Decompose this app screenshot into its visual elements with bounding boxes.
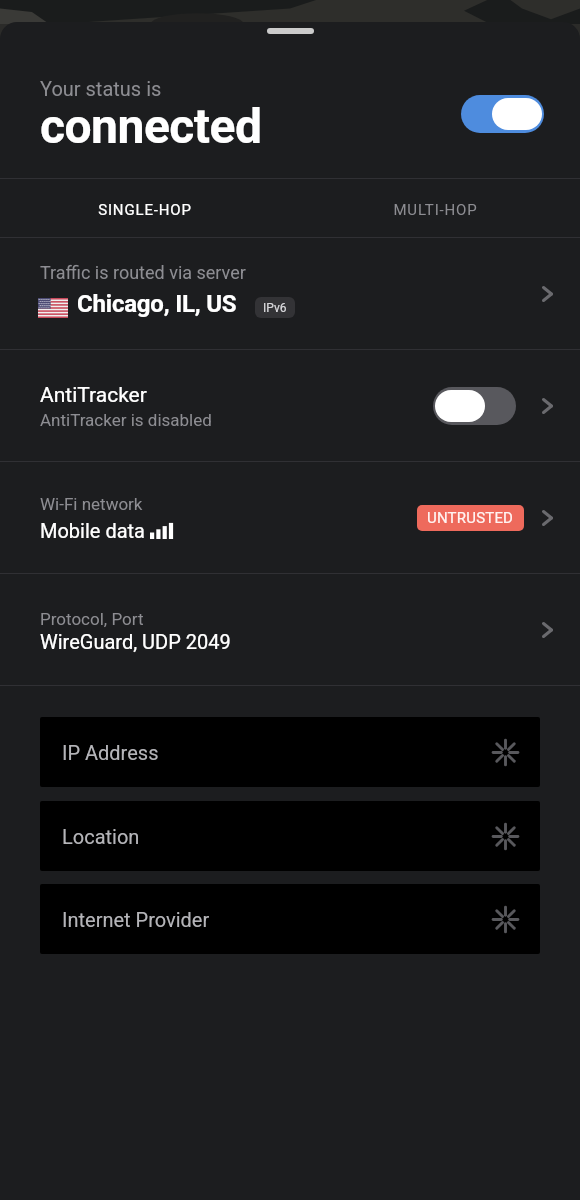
staticText: Your status is [40, 77, 162, 100]
other: Open [541, 620, 555, 640]
button[interactable]: Location [40, 801, 540, 871]
button[interactable]: Traffic is routed via server [0, 238, 580, 349]
staticText: IPv6 [263, 301, 287, 315]
staticText: Protocol, Port [40, 609, 144, 629]
other: Open [541, 396, 555, 416]
staticText: MULTI-HOP [393, 201, 478, 219]
staticText: UNTRUSTED [427, 509, 514, 527]
staticText: SINGLE-HOP [98, 201, 192, 219]
button[interactable]: Protocol, Port [0, 574, 580, 685]
button[interactable]: IP Address [40, 717, 540, 787]
button[interactable]: AntiTracker toggle [433, 387, 516, 425]
staticText: Location [62, 825, 140, 848]
button[interactable]: AntiTracker [0, 350, 580, 461]
staticText: Mobile data [40, 519, 145, 542]
other: Open [541, 508, 555, 528]
staticText: IP Address [62, 741, 159, 764]
button[interactable]: MULTI-HOP [290, 179, 580, 237]
button[interactable]: UNTRUSTED [417, 505, 524, 531]
staticText: Traffic is routed via server [40, 262, 246, 283]
staticText: Internet Provider [62, 908, 210, 931]
staticText: AntiTracker is disabled [40, 410, 212, 430]
other: Open [541, 284, 555, 304]
button[interactable]: SINGLE-HOP [0, 179, 290, 237]
staticText: Wi-Fi network [40, 494, 143, 514]
staticText: AntiTracker [40, 383, 147, 408]
button[interactable]: Internet Provider [40, 884, 540, 954]
button[interactable]: Wi-Fi network [0, 462, 580, 573]
staticText: connected [40, 98, 262, 154]
staticText: WireGuard, UDP 2049 [40, 630, 231, 653]
button[interactable]: Connection toggle [461, 95, 544, 133]
staticText: Chicago, IL, US [77, 290, 237, 318]
